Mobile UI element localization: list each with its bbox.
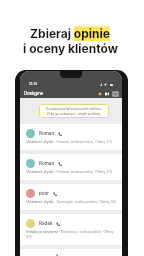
other: Notifications xyxy=(105,92,109,96)
staticText: 12:36 xyxy=(29,82,38,86)
button[interactable]: piotr xyxy=(20,184,122,210)
staticText: Roman xyxy=(39,131,55,137)
other: Call xyxy=(56,222,60,226)
staticText: Roman xyxy=(39,161,55,167)
staticText: Dostępne xyxy=(24,91,44,96)
staticText: Układanie płytek · Swarzędz, wielkopolsk… xyxy=(26,200,117,204)
other: Favourites xyxy=(98,92,102,96)
staticText: Układanie płytek · Poznań, wielkopolskie… xyxy=(26,170,113,174)
other: Call xyxy=(53,192,57,196)
staticText: i oceny klientów xyxy=(23,41,118,56)
staticText: Instalacje sanitarne · Bukowina, wielkop… xyxy=(26,230,117,239)
staticText: Zbieraj opinie xyxy=(30,26,110,41)
button[interactable]: Roman xyxy=(20,124,122,150)
staticText: piotr xyxy=(39,191,50,197)
staticText: Radek xyxy=(39,221,53,227)
button[interactable]: Marek xyxy=(20,249,122,256)
other: Call xyxy=(58,162,62,166)
staticText: Układanie płytek · Poznań, wielkopolskie… xyxy=(26,140,113,144)
other: Menu xyxy=(113,92,118,96)
staticText: Dostawca podał swój numer telefonu. Żeby… xyxy=(42,107,106,115)
button[interactable]: Radek xyxy=(20,214,122,245)
other: Call xyxy=(58,132,62,136)
button[interactable]: Roman xyxy=(20,154,122,180)
